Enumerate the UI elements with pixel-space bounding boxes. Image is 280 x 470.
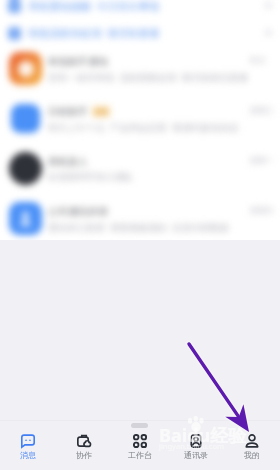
button[interactable]: Messages xyxy=(0,421,56,460)
staticText: Baidu经验 xyxy=(159,423,247,448)
staticText: 欢迎新同学加入团队 xyxy=(48,171,134,183)
staticText: 星期三 xyxy=(250,105,274,115)
button[interactable]: 公司通讯录群 xyxy=(0,199,280,240)
staticText: 协作 xyxy=(76,450,92,460)
button[interactable]: 群机器人 xyxy=(0,149,280,199)
staticText: 消息 xyxy=(20,450,36,460)
staticText: 审批助手通知 xyxy=(48,55,108,68)
staticText: 提醒 xyxy=(94,107,108,116)
staticText: 通讯录已更新 请查看最新的 信息内容数据 xyxy=(48,221,229,234)
staticText: 您有一条待审批 流程需要处理 请尽快前往查看 xyxy=(48,71,248,84)
staticText: jingyan.baidu.com xyxy=(159,441,224,451)
staticText: 我的 xyxy=(244,450,260,460)
staticText: 工作台 xyxy=(128,450,152,460)
staticText: 星期一 xyxy=(250,155,274,165)
button[interactable]: Contacts xyxy=(168,421,224,460)
staticText: 审批流程待处理 请尽快查看 xyxy=(28,26,160,40)
staticText: 通讯录 xyxy=(184,450,208,460)
staticText: 公司通讯录群 xyxy=(48,205,108,218)
button[interactable]: 日程助手 xyxy=(0,99,280,149)
staticText: 星期日 xyxy=(250,205,274,215)
staticText: 日程助手 xyxy=(48,105,88,118)
button[interactable]: 审批助手通知 xyxy=(0,49,280,99)
staticText: 系统通知提醒 今日待办事项 xyxy=(28,0,160,13)
button[interactable]: Collaboration xyxy=(56,421,112,460)
button[interactable]: Mine xyxy=(224,421,280,460)
staticText: 群机器人 xyxy=(48,155,88,168)
button[interactable]: Workbench xyxy=(112,421,168,460)
staticText: 明天上午十点 产品周会议室 请准时参加勿迟 xyxy=(48,121,239,134)
